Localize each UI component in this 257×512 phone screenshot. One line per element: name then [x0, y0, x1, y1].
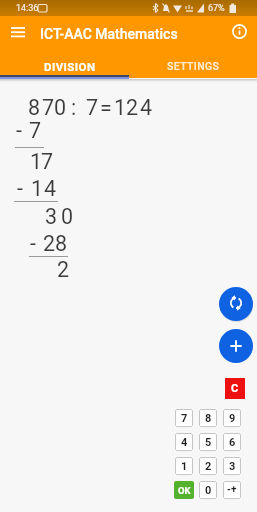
staticText: 6 [229, 436, 236, 449]
staticText: 0 [205, 484, 212, 497]
staticText: 7 [86, 95, 99, 120]
staticText: 0 [54, 95, 67, 120]
staticText: 2 [126, 95, 139, 120]
staticText: SETTINGS [167, 60, 220, 72]
staticText: - [16, 118, 22, 143]
button[interactable]: 5 [199, 433, 217, 451]
staticText: 7 [181, 412, 188, 425]
staticText: 4 [44, 176, 57, 201]
staticText: 67% [208, 3, 225, 14]
staticText: 1 [30, 149, 43, 174]
staticText: 1 [31, 176, 44, 201]
button[interactable] [6, 22, 30, 44]
button[interactable]: 0 [199, 481, 217, 499]
staticText: 9 [229, 412, 236, 425]
button[interactable]: SETTINGS [129, 54, 257, 78]
button[interactable]: C [225, 378, 245, 399]
button[interactable]: OK [174, 481, 194, 499]
staticText: = [100, 95, 112, 120]
staticText: 4 [181, 436, 188, 449]
staticText: 7 [29, 118, 42, 143]
staticText: -+ [227, 484, 237, 496]
staticText: 1 [114, 95, 127, 120]
button[interactable] [219, 287, 253, 321]
button[interactable]: 2 [199, 457, 217, 475]
staticText: 5 [205, 436, 212, 449]
staticText: : [71, 95, 77, 120]
staticText: OK [178, 485, 191, 496]
staticText: 8 [55, 231, 68, 256]
button[interactable] [229, 21, 250, 42]
staticText: 1 [181, 460, 188, 473]
staticText: ICT-AAC Mathematics [40, 26, 178, 42]
staticText: 4 [140, 95, 153, 120]
staticText: 2 [43, 231, 56, 256]
button[interactable]: 8 [199, 409, 217, 427]
staticText: - [30, 231, 36, 256]
staticText: 2 [205, 460, 212, 473]
staticText: 7 [42, 95, 55, 120]
staticText: 3 [229, 460, 236, 473]
staticText: 7 [41, 149, 54, 174]
staticText: 8 [28, 95, 41, 120]
staticText: 0 [61, 204, 74, 229]
button[interactable]: 7 [175, 409, 193, 427]
button[interactable]: 9 [223, 409, 241, 427]
button[interactable]: 3 [223, 457, 241, 475]
button[interactable]: 4 [175, 433, 193, 451]
staticText: 14:36 [16, 3, 39, 14]
staticText: DIVISION [44, 60, 96, 73]
button[interactable]: 1 [175, 457, 193, 475]
button[interactable] [219, 329, 253, 363]
button[interactable]: 6 [223, 433, 241, 451]
button[interactable]: DIVISION [5, 54, 134, 78]
staticText: C [231, 382, 239, 395]
staticText: - [17, 176, 23, 201]
button[interactable]: -+ [223, 481, 241, 499]
staticText: 2 [57, 257, 70, 282]
staticText: 3 [45, 204, 58, 229]
staticText: 8 [205, 412, 212, 425]
